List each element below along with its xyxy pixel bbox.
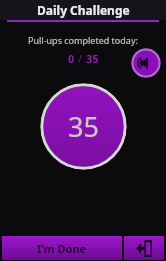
button[interactable]: 35: [40, 83, 127, 170]
staticText: 35: [86, 51, 99, 66]
staticText: Daily Challenge: [37, 2, 130, 18]
button[interactable]: I'm Done: [2, 236, 122, 260]
staticText: Pull-ups completed today:: [28, 34, 138, 46]
staticText: 0: [68, 51, 75, 66]
button[interactable]: Exit: [124, 236, 164, 260]
staticText: 35: [68, 108, 99, 145]
button[interactable]: Toggle sound: [131, 48, 161, 78]
staticText: /: [75, 51, 86, 66]
staticText: I'm Done: [37, 241, 87, 256]
